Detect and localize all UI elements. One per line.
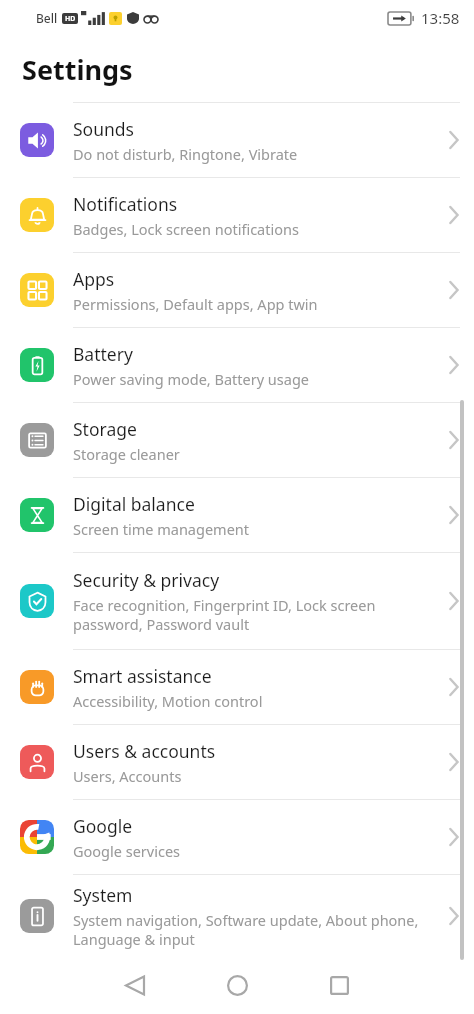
- button[interactable]: Security & privacy: [0, 553, 474, 649]
- staticText: Badges, Lock screen notifications: [73, 219, 299, 239]
- button[interactable]: Digital balance: [0, 478, 474, 552]
- button[interactable]: Google: [0, 800, 474, 874]
- staticText: Do not disturb, Ringtone, Vibrate: [73, 144, 298, 164]
- button[interactable]: Recent apps: [301, 956, 377, 1014]
- button[interactable]: Storage: [0, 403, 474, 477]
- staticText: 13:58: [421, 8, 460, 28]
- staticText: Power saving mode, Battery usage: [73, 369, 310, 389]
- button[interactable]: Battery: [0, 328, 474, 402]
- staticText: HD: [65, 14, 76, 24]
- staticText: Settings: [22, 51, 133, 88]
- staticText: Security & privacy: [73, 568, 220, 592]
- staticText: System navigation, Software update, Abou…: [73, 910, 426, 949]
- staticText: Face recognition, Fingerprint ID, Lock s…: [73, 595, 426, 634]
- staticText: Sounds: [73, 117, 134, 141]
- button[interactable]: Notifications: [0, 178, 474, 252]
- button[interactable]: Back: [97, 956, 173, 1014]
- staticText: Storage cleaner: [73, 444, 180, 464]
- staticText: Users & accounts: [73, 739, 216, 763]
- staticText: Storage: [73, 417, 137, 441]
- button[interactable]: Sounds: [0, 103, 474, 177]
- staticText: Google services: [73, 841, 181, 861]
- staticText: Digital balance: [73, 492, 195, 516]
- button[interactable]: System: [0, 875, 474, 956]
- staticText: Bell: [36, 10, 58, 26]
- button[interactable]: Users & accounts: [0, 725, 474, 799]
- button[interactable]: Apps: [0, 253, 474, 327]
- staticText: System: [73, 883, 133, 907]
- staticText: Battery: [73, 342, 133, 366]
- staticText: Apps: [73, 267, 115, 291]
- staticText: Permissions, Default apps, App twin: [73, 294, 318, 314]
- staticText: Google: [73, 814, 133, 838]
- staticText: Users, Accounts: [73, 766, 182, 786]
- staticText: Screen time management: [73, 519, 249, 539]
- staticText: Smart assistance: [73, 664, 212, 688]
- button[interactable]: Smart assistance: [0, 650, 474, 724]
- staticText: Accessibility, Motion control: [73, 691, 263, 711]
- staticText: Notifications: [73, 192, 178, 216]
- button[interactable]: Home: [199, 956, 275, 1014]
